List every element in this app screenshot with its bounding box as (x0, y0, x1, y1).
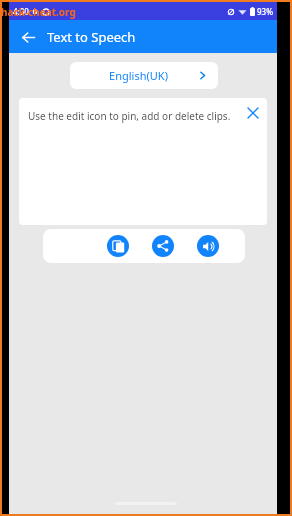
button[interactable]: Share (152, 235, 174, 257)
button[interactable]: Back (15, 24, 41, 50)
staticText: English(UK) (109, 68, 168, 83)
staticText: hack-cheat.org (1, 5, 76, 19)
staticText: Use the edit icon to pin, add or delete … (28, 109, 231, 123)
button[interactable]: English(UK) (70, 62, 218, 89)
button[interactable]: Speak (197, 235, 219, 257)
button[interactable]: Dismiss (243, 103, 263, 123)
staticText: 93% (257, 6, 273, 17)
staticText: Text to Speech (47, 28, 136, 46)
staticText: 4:00 (13, 6, 29, 17)
button[interactable]: Copy (107, 235, 129, 257)
